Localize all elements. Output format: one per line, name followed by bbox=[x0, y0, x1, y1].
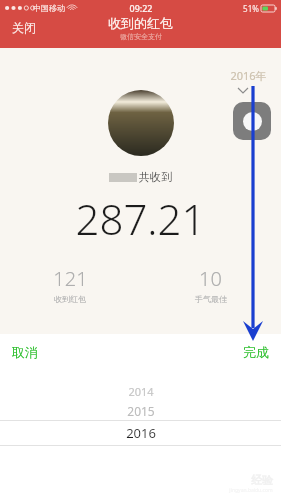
staticText: 收到红包 bbox=[54, 294, 86, 304]
button[interactable]: 取消 bbox=[0, 334, 50, 370]
staticText: 09:22 bbox=[129, 2, 153, 14]
staticText: 10 bbox=[199, 265, 222, 292]
button[interactable]: 头像 bbox=[108, 90, 174, 156]
staticText: 微信安全支付 bbox=[120, 32, 162, 41]
button[interactable]: 121 bbox=[0, 265, 140, 304]
staticText: 2014 bbox=[128, 384, 154, 399]
staticText: 手气最佳 bbox=[195, 294, 227, 304]
button[interactable]: 2014 bbox=[0, 382, 281, 401]
staticText: 经验 bbox=[251, 473, 273, 487]
button[interactable]: 关闭 bbox=[0, 16, 48, 39]
staticText: jingyan.baidu.com bbox=[229, 487, 273, 494]
button[interactable]: 相机 bbox=[233, 102, 271, 140]
staticText: 中国移动 bbox=[33, 3, 65, 13]
staticText: 共收到 bbox=[139, 170, 172, 184]
staticText: 取消 bbox=[12, 344, 38, 360]
staticText: 121 bbox=[53, 265, 88, 292]
staticText: 2015 bbox=[127, 403, 155, 419]
staticText: 收到的红包 bbox=[108, 15, 173, 31]
staticText: 287.21 bbox=[75, 190, 206, 247]
staticText: 51% bbox=[243, 3, 259, 14]
button[interactable]: 2015 bbox=[0, 401, 281, 420]
button[interactable]: 10 bbox=[140, 265, 281, 304]
button[interactable]: 2016 bbox=[0, 420, 281, 446]
staticText: 完成 bbox=[243, 344, 269, 360]
staticText: 2016年 bbox=[230, 68, 267, 83]
staticText: 2016 bbox=[126, 424, 156, 442]
staticText: 关闭 bbox=[12, 20, 36, 35]
button[interactable]: 完成 bbox=[231, 334, 281, 370]
